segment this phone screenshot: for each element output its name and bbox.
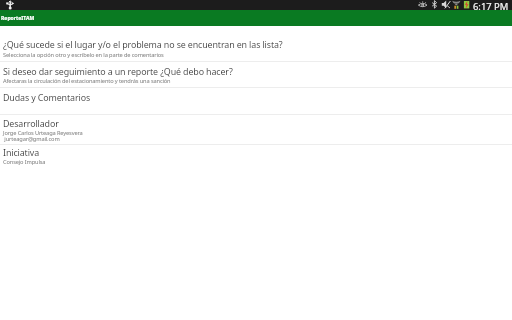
staticText: Iniciativa xyxy=(3,146,40,158)
staticText: Selecciona la opción otro y escríbelo en… xyxy=(3,51,164,59)
button[interactable]: Desarrollador xyxy=(0,115,512,144)
staticText: Si deseo dar seguimiento a un reporte ¿Q… xyxy=(3,65,233,77)
button[interactable]: Iniciativa xyxy=(0,145,512,174)
staticText: 6:17 PM xyxy=(473,0,509,10)
staticText: Consejo Impulsa xyxy=(3,158,46,166)
staticText: Desarrollador xyxy=(3,117,59,129)
other: USB connected xyxy=(0,0,512,10)
staticText: jurteagar@gmail.com xyxy=(3,135,60,143)
button[interactable]: ¿Qué sucede si el lugar y/o el problema … xyxy=(0,26,512,61)
button[interactable]: ReporteITAM xyxy=(0,10,512,26)
staticText: Afectaras la circulación del estacionami… xyxy=(3,77,171,85)
other: Status: smart stay, bluetooth, silent, w… xyxy=(417,0,470,10)
staticText: Dudas y Comentarios xyxy=(3,91,91,103)
staticText: Jorge Carlos Urteaga Reyesvera xyxy=(3,129,83,137)
button[interactable]: Dudas y Comentarios xyxy=(0,88,512,114)
staticText: ¿Qué sucede si el lugar y/o el problema … xyxy=(3,38,283,50)
staticText: ReporteITAM xyxy=(1,15,35,22)
button[interactable]: Si deseo dar seguimiento a un reporte ¿Q… xyxy=(0,62,512,87)
